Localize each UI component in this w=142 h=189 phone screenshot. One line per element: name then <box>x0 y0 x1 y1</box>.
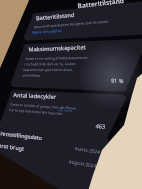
button[interactable]: Battery health settings <box>0 0 142 189</box>
